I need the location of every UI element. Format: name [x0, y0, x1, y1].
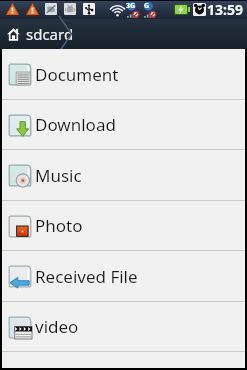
staticText: 13:59	[207, 0, 243, 19]
button[interactable]: video	[2, 302, 245, 351]
staticText: Download	[35, 113, 116, 136]
staticText: sdcard	[26, 24, 74, 44]
staticText: Music	[35, 164, 82, 187]
button[interactable]: Document	[2, 49, 245, 99]
staticText: video	[35, 315, 79, 338]
staticText: Document	[35, 63, 119, 86]
staticText: Received File	[35, 265, 138, 288]
button[interactable]: Received File	[2, 251, 245, 301]
staticText: G	[144, 1, 150, 11]
staticText: 3G	[126, 1, 136, 11]
button[interactable]: sdcard	[0, 19, 82, 49]
staticText: Photo	[35, 214, 83, 237]
button[interactable]: Music	[2, 150, 245, 200]
button[interactable]: Photo	[2, 201, 245, 250]
button[interactable]: Download	[2, 100, 245, 149]
